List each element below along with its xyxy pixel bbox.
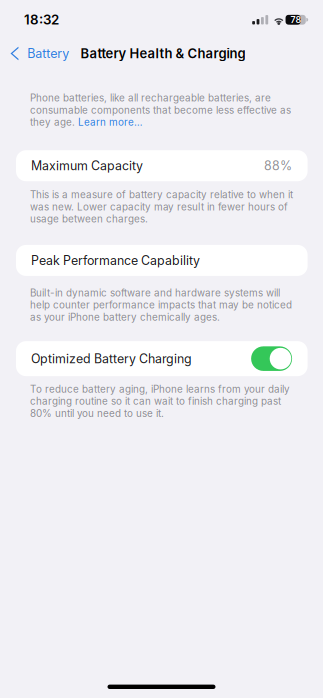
button[interactable]: Battery (0, 39, 80, 67)
staticText: Phone batteries, like all rechargeable b… (30, 92, 291, 128)
staticText: Peak Performance Capability (31, 253, 200, 268)
staticText: To reduce battery aging, iPhone learns f… (30, 383, 290, 419)
button[interactable]: Maximum Capacity (0, 150, 323, 181)
staticText: 78 (290, 14, 301, 25)
staticText: Battery (27, 46, 69, 61)
staticText: Battery Health & Charging (80, 46, 245, 61)
staticText: This is a measure of battery capacity re… (30, 189, 293, 225)
staticText: Optimized Battery Charging (31, 351, 192, 366)
staticText: Built-in dynamic software and hardware s… (30, 287, 292, 323)
staticText: 88% (264, 158, 292, 173)
button[interactable]: Peak Performance Capability (0, 245, 323, 276)
staticText: Maximum Capacity (31, 158, 143, 173)
staticText: 18:32 (24, 12, 59, 28)
button[interactable]: Optimized Battery Charging (0, 341, 323, 376)
